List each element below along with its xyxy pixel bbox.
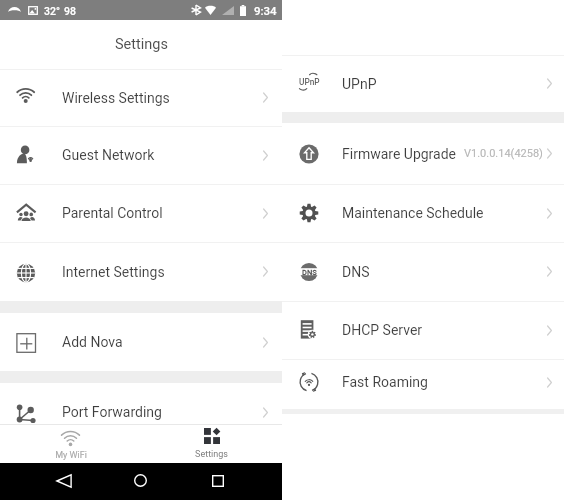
button[interactable]: Port Forwarding <box>0 383 282 441</box>
button[interactable]: Back <box>46 462 82 499</box>
staticText: UPnP <box>299 77 320 87</box>
staticText: Internet Settings <box>62 264 165 280</box>
staticText: 9:34 <box>254 4 277 17</box>
staticText: UPnP <box>342 76 377 92</box>
button[interactable]: Firmware Upgrade <box>282 123 564 184</box>
button[interactable]: Wireless Settings <box>0 69 282 126</box>
button[interactable]: DHCP Server <box>282 301 564 359</box>
staticText: V1.0.0.14(4258) <box>464 147 543 160</box>
staticText: DNS <box>302 268 317 277</box>
staticText: DHCP Server <box>342 322 423 338</box>
button[interactable]: Parental Control <box>0 184 282 242</box>
staticText: Port Forwarding <box>62 404 162 420</box>
staticText: 32° <box>44 5 60 17</box>
button[interactable]: My WiFi <box>0 424 141 463</box>
staticText: Firmware Upgrade <box>342 146 457 162</box>
staticText: Wireless Settings <box>62 90 170 106</box>
staticText: Maintenance Schedule <box>342 205 484 221</box>
staticText: Settings <box>115 36 168 53</box>
button[interactable]: Home <box>122 462 158 499</box>
button[interactable]: Fast Roaming <box>282 359 564 405</box>
staticText: Settings <box>195 449 228 460</box>
staticText: Add Nova <box>62 334 123 350</box>
staticText: Parental Control <box>62 205 163 221</box>
button[interactable]: Add Nova <box>0 313 282 371</box>
staticText: DNS <box>342 264 370 280</box>
staticText: Guest Network <box>62 147 155 163</box>
button[interactable]: Maintenance Schedule <box>282 184 564 242</box>
button[interactable]: Recents <box>200 462 236 499</box>
button[interactable]: DNS <box>282 242 564 301</box>
staticText: Fast Roaming <box>342 374 428 390</box>
staticText: My WiFi <box>55 450 87 461</box>
button[interactable]: UPnP <box>282 55 564 112</box>
button[interactable]: Internet Settings <box>0 242 282 301</box>
staticText: 98 <box>64 5 76 17</box>
button[interactable]: Settings <box>141 424 282 463</box>
button[interactable]: Guest Network <box>0 126 282 184</box>
